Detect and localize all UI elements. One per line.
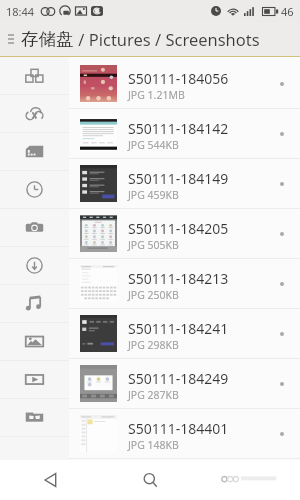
staticText: S50111-184213: [128, 269, 229, 288]
button[interactable]: Apps packages: [0, 399, 69, 436]
button[interactable]: Pictures: [0, 323, 69, 360]
staticText: S50111-184142: [128, 119, 229, 138]
button[interactable]: Back: [0, 460, 100, 500]
staticText: JPG 544KB: [128, 138, 179, 152]
button[interactable]: S50111-184149: [69, 159, 300, 208]
staticText: JPG 287KB: [128, 388, 179, 402]
button[interactable]: S50111-184241: [69, 309, 300, 358]
staticText: 46: [281, 4, 294, 19]
button[interactable]: Videos: [0, 361, 69, 398]
button[interactable]: S50111-184056: [69, 59, 300, 108]
staticText: S50111-184149: [128, 169, 229, 188]
staticText: 18:44: [6, 4, 35, 19]
button[interactable]: Camera: [0, 209, 69, 246]
button[interactable]: More options: [264, 259, 300, 308]
button[interactable]: S50111-184205: [69, 209, 300, 258]
staticText: JPG 298KB: [128, 338, 179, 352]
button[interactable]: Cloud: [0, 95, 69, 132]
button[interactable]: S50111-184401: [69, 409, 300, 458]
staticText: S50111-184056: [128, 69, 229, 88]
staticText: S50111-184205: [128, 219, 229, 238]
button[interactable]: S50111-184142: [69, 109, 300, 158]
button[interactable]: More options: [264, 109, 300, 158]
button[interactable]: Menu: [0, 22, 21, 56]
button[interactable]: More options: [264, 309, 300, 358]
button[interactable]: More options: [264, 209, 300, 258]
staticText: S50111-184401: [128, 419, 229, 438]
staticText: JPG 505KB: [128, 238, 179, 252]
button[interactable]: S50111-184249: [69, 359, 300, 408]
button[interactable]: Music: [0, 285, 69, 322]
button[interactable]: More options: [264, 59, 300, 108]
button[interactable]: More options: [264, 359, 300, 408]
staticText: 存储盘: [21, 28, 74, 50]
staticText: JPG 148KB: [128, 438, 179, 452]
staticText: JPG 250KB: [128, 288, 179, 302]
button[interactable]: S50111-184213: [69, 259, 300, 308]
button[interactable]: Recent: [0, 171, 69, 208]
button[interactable]: Downloads: [0, 247, 69, 284]
staticText: S50111-184241: [128, 319, 229, 338]
button[interactable]: More options: [264, 159, 300, 208]
staticText: JPG 1.21MB: [128, 88, 185, 102]
button[interactable]: Search: [100, 460, 200, 500]
button[interactable]: Apps: [0, 57, 69, 94]
button[interactable]: More options: [264, 409, 300, 458]
staticText: / Pictures / Screenshots: [74, 28, 260, 50]
staticText: JPG 459KB: [128, 188, 179, 202]
staticText: S50111-184249: [128, 369, 229, 388]
button[interactable]: Documents: [0, 133, 69, 170]
